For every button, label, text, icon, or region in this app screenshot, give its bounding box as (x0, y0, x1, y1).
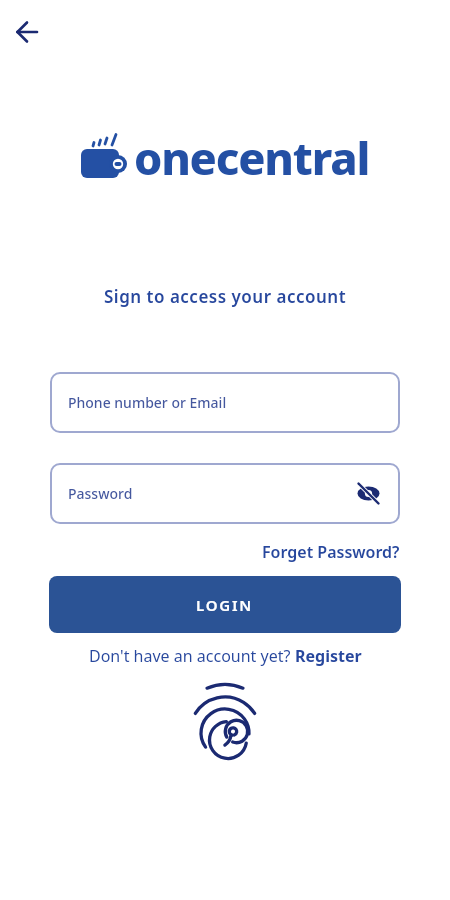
button[interactable]: Forget Password? (262, 541, 400, 563)
button[interactable]: Register (295, 645, 362, 667)
button[interactable] (186, 684, 264, 764)
staticText: onecentral (134, 127, 370, 188)
button[interactable] (8, 12, 48, 52)
staticText: Phone number or Email (68, 393, 227, 412)
button[interactable]: Password (50, 463, 400, 524)
staticText: Don't have an account yet? (89, 645, 295, 667)
button[interactable]: LOGIN (49, 576, 401, 633)
staticText: LOGIN (196, 595, 254, 615)
button[interactable]: Phone number or Email (50, 372, 400, 433)
staticText: Sign to access your account (104, 285, 347, 308)
staticText: Password (68, 484, 133, 503)
